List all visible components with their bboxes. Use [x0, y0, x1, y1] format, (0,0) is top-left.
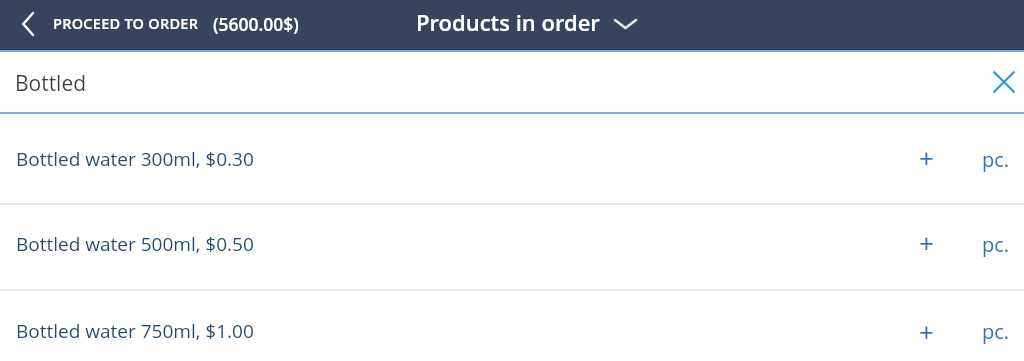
staticText: Bottled water 500ml, $0.50: [16, 231, 254, 257]
staticText: Bottled: [15, 69, 87, 98]
staticText: +: [919, 225, 934, 260]
button[interactable]: Products in order: [416, 0, 637, 50]
staticText: pc.: [982, 231, 1010, 258]
button[interactable]: +: [906, 224, 946, 264]
staticText: Products in order: [416, 7, 600, 37]
button[interactable]: PROCEED TO ORDER: [0, 0, 299, 49]
staticText: (5600.00$): [213, 12, 299, 36]
button[interactable]: Bottled water 300ml, $0.30: [0, 114, 1024, 203]
staticText: PROCEED TO ORDER: [53, 14, 199, 34]
button[interactable]: +: [906, 139, 946, 179]
staticText: +: [919, 314, 934, 349]
staticText: pc.: [982, 146, 1010, 173]
staticText: +: [919, 140, 934, 175]
button[interactable]: Bottled: [0, 52, 1024, 112]
button[interactable]: Bottled water 500ml, $0.50: [0, 205, 1024, 289]
staticText: pc.: [982, 318, 1010, 345]
button[interactable]: [993, 71, 1015, 93]
staticText: Bottled water 300ml, $0.30: [16, 146, 254, 172]
button[interactable]: +: [906, 311, 946, 351]
button[interactable]: Bottled water 750ml, $1.00: [0, 291, 1024, 361]
staticText: Bottled water 750ml, $1.00: [16, 318, 254, 344]
